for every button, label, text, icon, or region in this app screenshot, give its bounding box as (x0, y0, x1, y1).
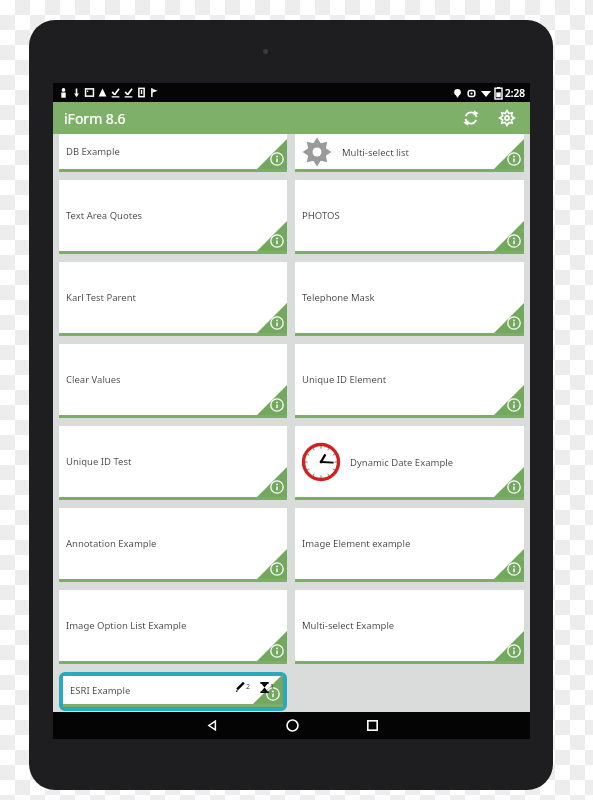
button[interactable]: ESRI Example (63, 676, 283, 707)
button[interactable]: Telephone Mask (295, 262, 524, 336)
staticText: Multi-select list (342, 146, 409, 159)
button[interactable]: Multi-select list (295, 134, 524, 172)
button[interactable]: Multi-select Example (295, 590, 524, 664)
staticText: ESRI Example (70, 684, 131, 697)
button[interactable]: Karl Test Parent (59, 262, 287, 336)
button[interactable]: Annotation Example (59, 508, 287, 582)
staticText: Unique ID Element (302, 373, 387, 386)
staticText: Image Option List Example (66, 619, 187, 632)
staticText: Text Area Quotes (66, 209, 143, 222)
staticText: 1 (270, 682, 275, 692)
staticText: Image Element example (302, 537, 411, 550)
staticText: Unique ID Test (66, 455, 132, 468)
staticText: Annotation Example (66, 537, 157, 550)
staticText: Telephone Mask (302, 291, 375, 304)
button[interactable]: Text Area Quotes (59, 180, 287, 254)
staticText: Multi-select Example (302, 619, 395, 632)
staticText: 2 (246, 682, 251, 692)
button[interactable]: Image Option List Example (59, 590, 287, 664)
staticText: Dynamic Date Example (350, 456, 454, 469)
button[interactable]: Home (272, 712, 312, 739)
staticText: iForm 8.6 (64, 109, 126, 128)
staticText: DB Example (66, 145, 120, 158)
staticText: Clear Values (66, 373, 121, 386)
button[interactable]: Settings (493, 104, 521, 132)
staticText: PHOTOS (302, 209, 340, 222)
staticText: Karl Test Parent (66, 291, 136, 304)
button[interactable]: Unique ID Test (59, 426, 287, 500)
button[interactable]: Recents (352, 712, 392, 739)
button[interactable]: Clear Values (59, 344, 287, 418)
button[interactable]: Refresh (457, 104, 485, 132)
button[interactable]: DB Example (59, 134, 287, 172)
button[interactable]: Image Element example (295, 508, 524, 582)
button[interactable]: PHOTOS (295, 180, 524, 254)
button[interactable]: Unique ID Element (295, 344, 524, 418)
button[interactable]: Dynamic Date Example (295, 426, 524, 500)
staticText: 2:28 (505, 86, 525, 100)
button[interactable]: Back (192, 712, 232, 739)
